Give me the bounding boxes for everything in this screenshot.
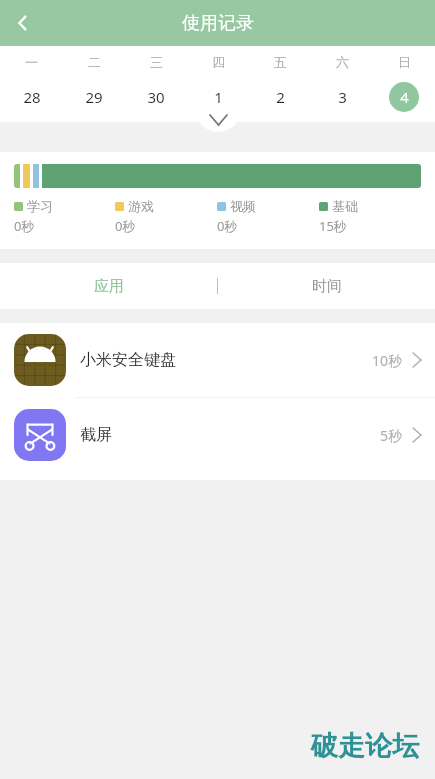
staticText: 5秒 bbox=[380, 426, 403, 445]
button[interactable]: Back bbox=[0, 0, 46, 46]
staticText: 0秒 bbox=[217, 217, 238, 235]
button[interactable]: 29 bbox=[63, 81, 125, 113]
staticText: 截屏 bbox=[80, 425, 380, 445]
staticText: 29 bbox=[85, 87, 103, 107]
staticText: 1 bbox=[214, 87, 223, 107]
button[interactable]: 时间 bbox=[218, 263, 435, 309]
staticText: 二 bbox=[88, 54, 101, 70]
staticText: 日 bbox=[398, 54, 411, 70]
staticText: 基础 bbox=[332, 198, 358, 214]
staticText: 28 bbox=[23, 87, 41, 107]
button[interactable]: 4 bbox=[373, 81, 435, 113]
staticText: 小米安全键盘 bbox=[80, 350, 372, 370]
staticText: 六 bbox=[336, 54, 349, 70]
staticText: 学习 bbox=[27, 198, 53, 214]
button[interactable]: 2 bbox=[249, 81, 311, 113]
staticText: 4 bbox=[400, 87, 409, 107]
staticText: 破走论坛 bbox=[311, 729, 419, 763]
staticText: 2 bbox=[276, 87, 285, 107]
button[interactable]: 3 bbox=[311, 81, 373, 113]
button[interactable]: 截屏 bbox=[0, 398, 435, 472]
button[interactable]: Expand calendar bbox=[195, 100, 241, 132]
staticText: 使用记录 bbox=[182, 12, 254, 35]
staticText: 3 bbox=[338, 87, 347, 107]
staticText: 五 bbox=[274, 54, 287, 70]
staticText: 三 bbox=[150, 54, 163, 70]
staticText: 30 bbox=[147, 87, 165, 107]
button[interactable]: 28 bbox=[0, 81, 63, 113]
staticText: 时间 bbox=[312, 277, 342, 296]
staticText: 视频 bbox=[230, 198, 256, 214]
staticText: 一 bbox=[25, 54, 38, 70]
staticText: 应用 bbox=[94, 277, 124, 296]
button[interactable]: 小米安全键盘 bbox=[0, 323, 435, 397]
button[interactable]: 1 bbox=[187, 81, 249, 113]
staticText: 15秒 bbox=[319, 217, 347, 235]
staticText: 四 bbox=[212, 54, 225, 70]
staticText: 0秒 bbox=[115, 217, 136, 235]
staticText: 0秒 bbox=[14, 217, 35, 235]
button[interactable]: 应用 bbox=[0, 263, 217, 309]
staticText: 10秒 bbox=[372, 351, 403, 370]
button[interactable]: 30 bbox=[125, 81, 187, 113]
staticText: 游戏 bbox=[128, 198, 154, 214]
